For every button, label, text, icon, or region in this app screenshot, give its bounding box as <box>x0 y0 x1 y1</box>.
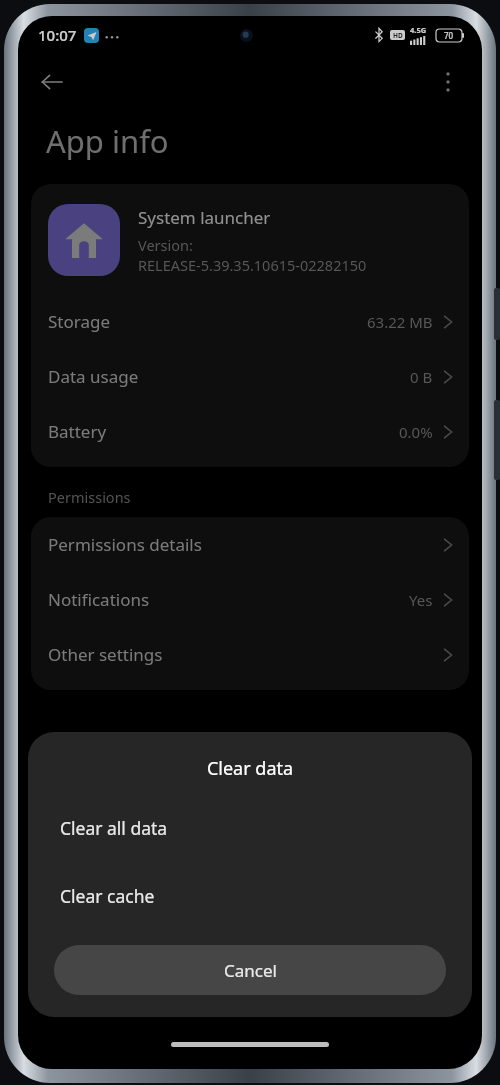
staticText: RELEASE-5.39.35.10615-02282150 <box>138 255 367 275</box>
button[interactable]: Other settings <box>31 627 469 682</box>
staticText: 10:07 <box>38 25 77 45</box>
staticText: 4.5G <box>410 25 427 35</box>
staticText: 70 <box>444 30 454 41</box>
button[interactable]: Back <box>30 60 74 104</box>
staticText: Clear all data <box>60 816 168 840</box>
staticText: Permissions details <box>48 533 443 556</box>
staticText: HD <box>393 31 403 40</box>
button[interactable]: Clear all data <box>28 805 472 851</box>
staticText: Permissions <box>48 487 131 507</box>
button[interactable]: Battery <box>31 404 469 459</box>
staticText: Notifications <box>48 588 409 611</box>
staticText: Clear data <box>28 756 472 781</box>
button[interactable]: Storage <box>31 294 469 349</box>
staticText: 0.0% <box>399 422 433 442</box>
staticText: App info <box>46 120 169 162</box>
staticText: Yes <box>409 590 433 610</box>
button[interactable]: Notifications <box>31 572 469 627</box>
staticText: Cancel <box>224 959 277 982</box>
button[interactable]: System launcher <box>31 184 469 294</box>
staticText: System launcher <box>138 206 271 229</box>
button[interactable]: Permissions details <box>31 517 469 572</box>
staticText: 0 B <box>410 367 433 387</box>
staticText: Data usage <box>48 365 410 388</box>
button[interactable]: Data usage <box>31 349 469 404</box>
staticText: Storage <box>48 310 367 333</box>
button[interactable]: Clear cache <box>28 873 472 919</box>
staticText: Version: <box>138 235 193 255</box>
staticText: Other settings <box>48 643 443 666</box>
button[interactable]: More options <box>426 60 470 104</box>
button[interactable]: Cancel <box>54 945 446 995</box>
staticText: Clear cache <box>60 884 155 908</box>
staticText: 63.22 MB <box>367 312 433 332</box>
staticText: Battery <box>48 420 399 443</box>
